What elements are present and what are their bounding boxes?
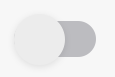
button[interactable]: Toggle bbox=[0, 0, 115, 77]
